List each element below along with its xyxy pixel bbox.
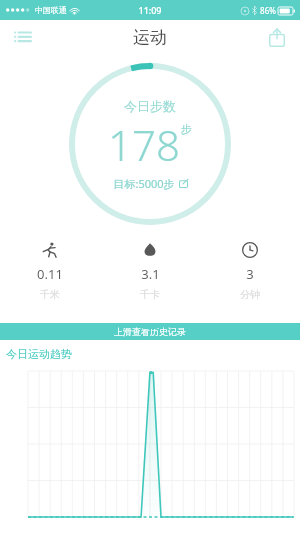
staticText: 86% <box>260 5 276 16</box>
staticText: 11:09 <box>138 4 162 16</box>
button[interactable]: 今日步数 <box>69 63 231 225</box>
staticText: 上滑查看历史记录 <box>114 326 186 337</box>
staticText: 千卡 <box>140 288 160 301</box>
button[interactable]: 3.1 <box>100 242 200 301</box>
button[interactable]: Menu <box>8 22 38 52</box>
staticText: 3 <box>246 265 254 283</box>
staticText: 0.11 <box>37 265 63 283</box>
staticText: 中国联通 <box>35 5 67 15</box>
staticText: 178 <box>108 116 180 173</box>
staticText: 分钟 <box>240 288 260 301</box>
staticText: 3.1 <box>141 265 160 283</box>
button[interactable]: 3 <box>200 242 300 301</box>
staticText: 运动 <box>133 27 167 48</box>
staticText: 今日步数 <box>124 98 176 114</box>
staticText: 步 <box>181 122 192 136</box>
staticText: 今日运动趋势 <box>6 347 72 361</box>
button[interactable]: 0.11 <box>0 242 100 301</box>
staticText: 千米 <box>40 288 60 301</box>
staticText: 目标:5000步 <box>113 176 175 191</box>
button[interactable]: Share <box>262 22 292 52</box>
button[interactable]: 上滑查看历史记录 <box>0 323 300 340</box>
